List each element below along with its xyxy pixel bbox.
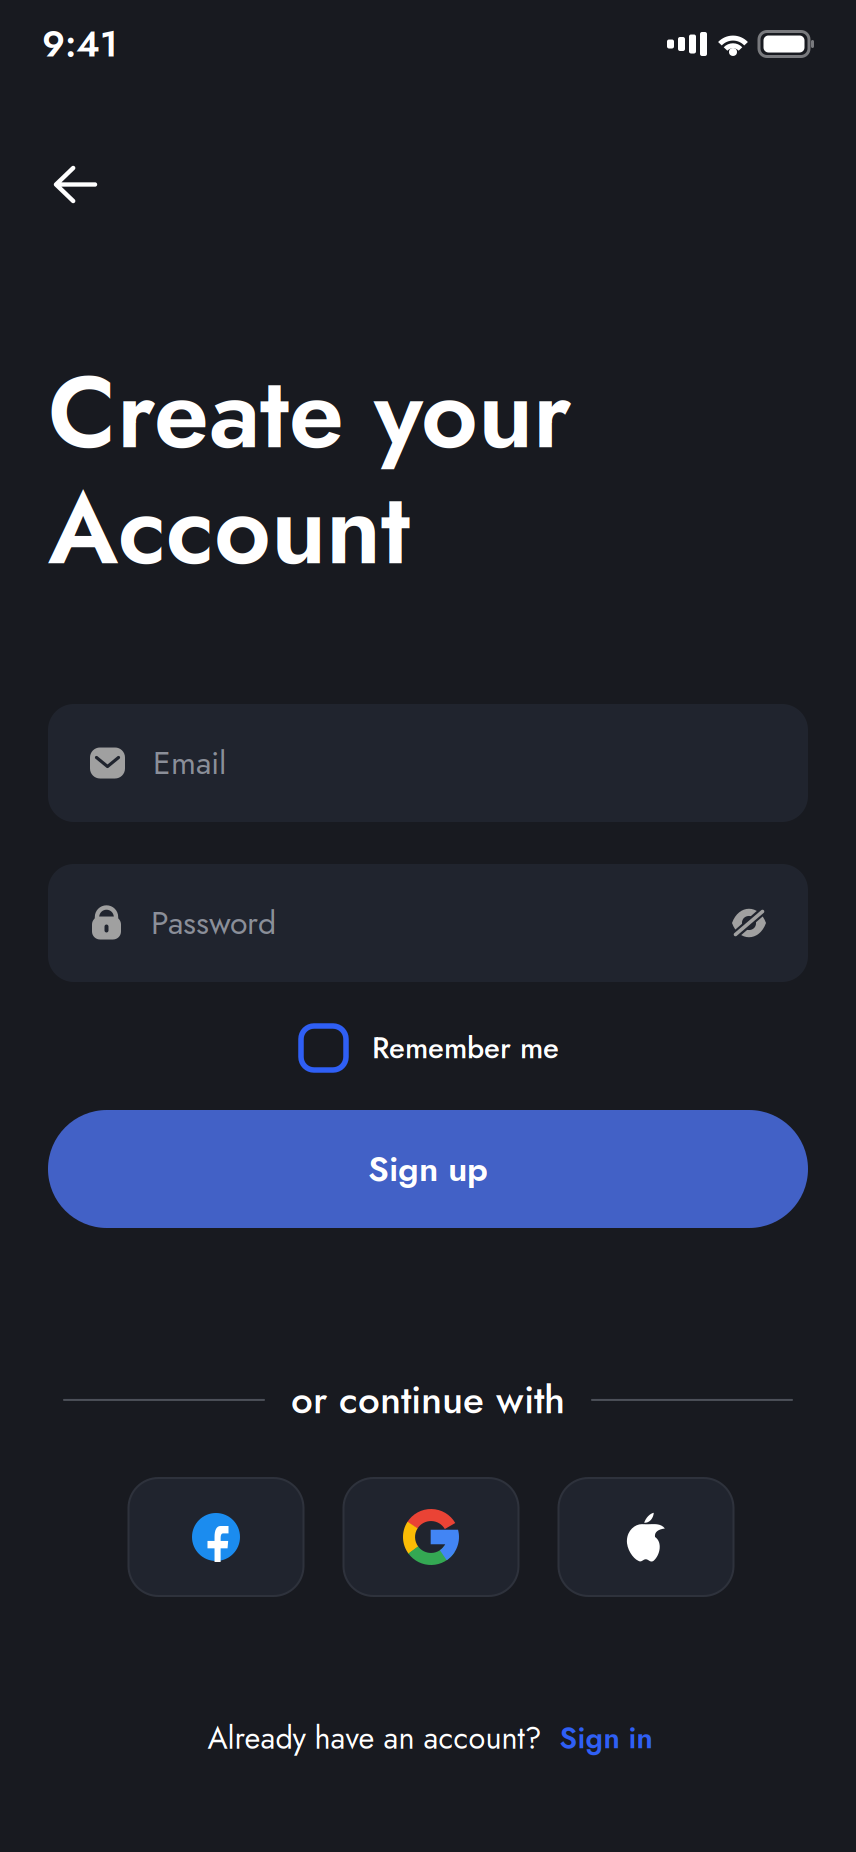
staticText: Already have an account? — [207, 1716, 541, 1760]
staticText: Account — [48, 458, 410, 600]
button[interactable]: Sign in — [541, 1717, 652, 1759]
staticText: Create your — [48, 342, 571, 484]
staticText: Email — [153, 740, 226, 786]
staticText: 9:41 — [42, 18, 118, 70]
button[interactable]: Sign up — [48, 1110, 808, 1228]
button[interactable]: Back — [34, 146, 117, 223]
staticText: Sign up — [368, 1144, 488, 1194]
button[interactable]: Show password — [732, 908, 766, 938]
staticText: or continue with — [291, 1372, 565, 1428]
staticText: Remember me — [372, 1027, 559, 1069]
button[interactable]: Continue with Google — [343, 1478, 518, 1596]
button[interactable]: Continue with Facebook — [128, 1478, 303, 1596]
staticText: Password — [151, 900, 276, 946]
button[interactable]: Remember me — [291, 1016, 569, 1080]
button[interactable]: Continue with Apple — [558, 1478, 733, 1596]
staticText: Sign in — [559, 1717, 652, 1759]
